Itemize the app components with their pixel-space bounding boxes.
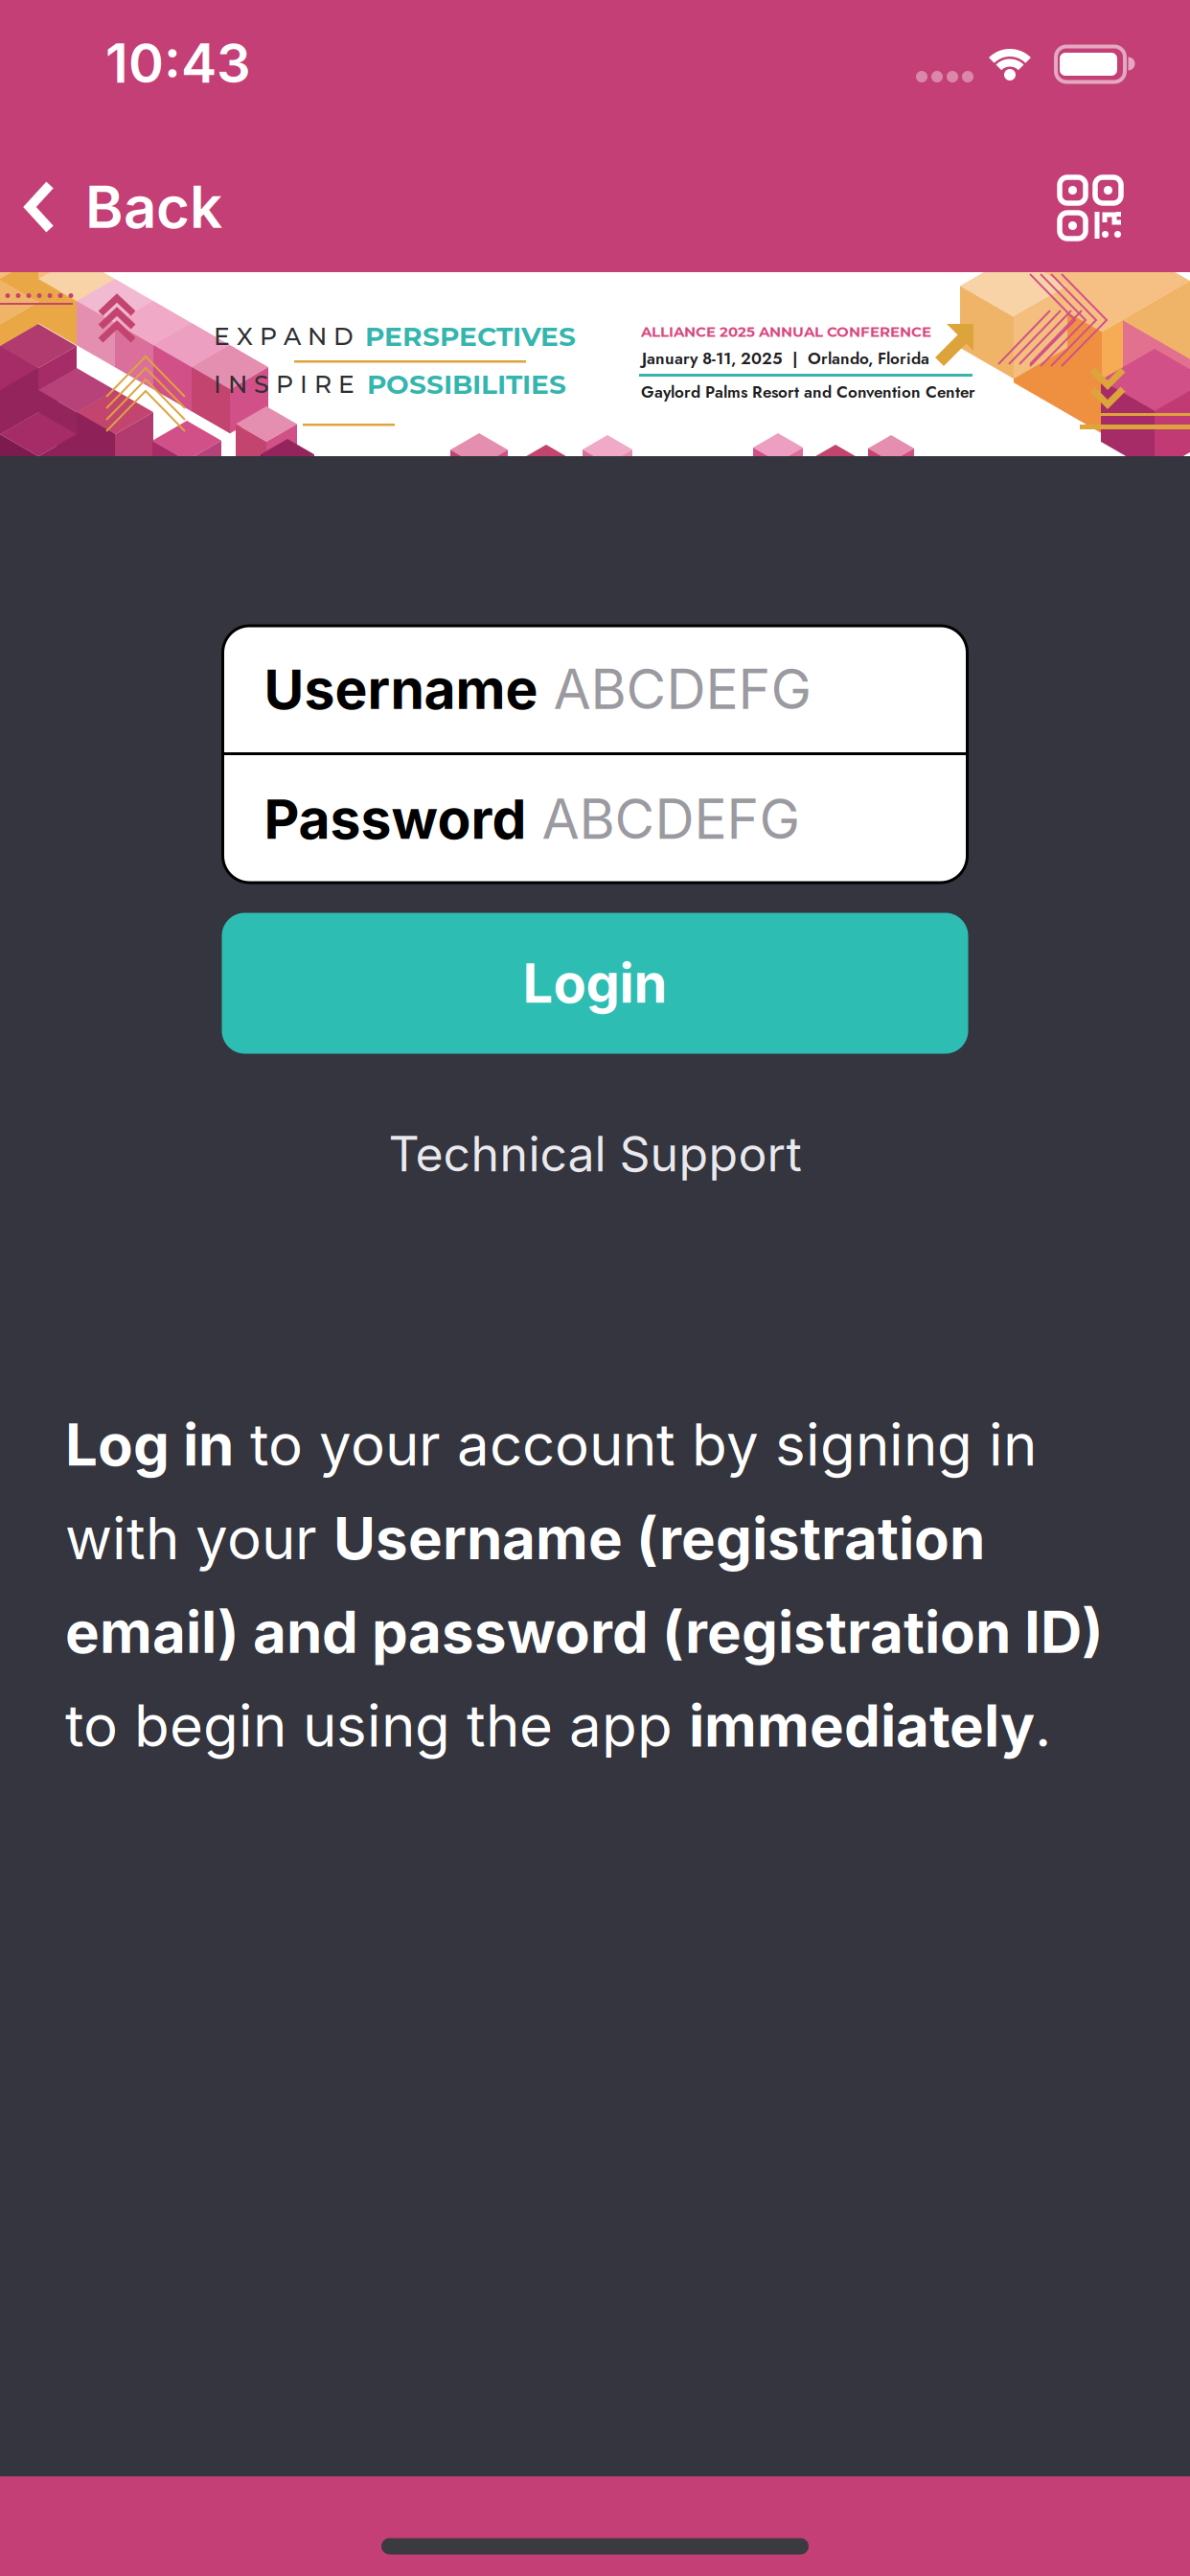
staticText: E X P A N D — [214, 322, 354, 351]
staticText: ALLIANCE 2025 ANNUAL CONFERENCE — [641, 323, 931, 340]
staticText: Gaylord Palms Resort and Convention Cent… — [641, 380, 975, 404]
button[interactable]: Back — [25, 172, 222, 242]
staticText: Technical Support — [389, 1125, 801, 1183]
staticText: Back — [85, 172, 222, 242]
staticText: PERSPECTIVES — [365, 320, 576, 353]
button[interactable]: Password — [223, 755, 967, 883]
staticText: ABCDEFG — [553, 656, 812, 722]
button[interactable]: Login — [222, 913, 968, 1054]
button[interactable]: Scan QR code — [1059, 176, 1122, 240]
staticText: ABCDEFG — [542, 786, 801, 852]
staticText: 10:43 — [105, 31, 251, 96]
staticText: January 8-11, 2025 | Orlando, Florida — [642, 347, 929, 370]
staticText: Log in to your account by signing in wit… — [65, 1411, 1104, 1759]
staticText: Password — [264, 786, 526, 852]
button[interactable]: Technical Support — [389, 1125, 801, 1183]
staticText: Username — [264, 656, 538, 722]
staticText: POSSIBILITIES — [367, 368, 566, 401]
button[interactable]: Username — [223, 626, 967, 752]
staticText: I N S P I R E — [214, 370, 355, 399]
staticText: Login — [523, 951, 667, 1016]
